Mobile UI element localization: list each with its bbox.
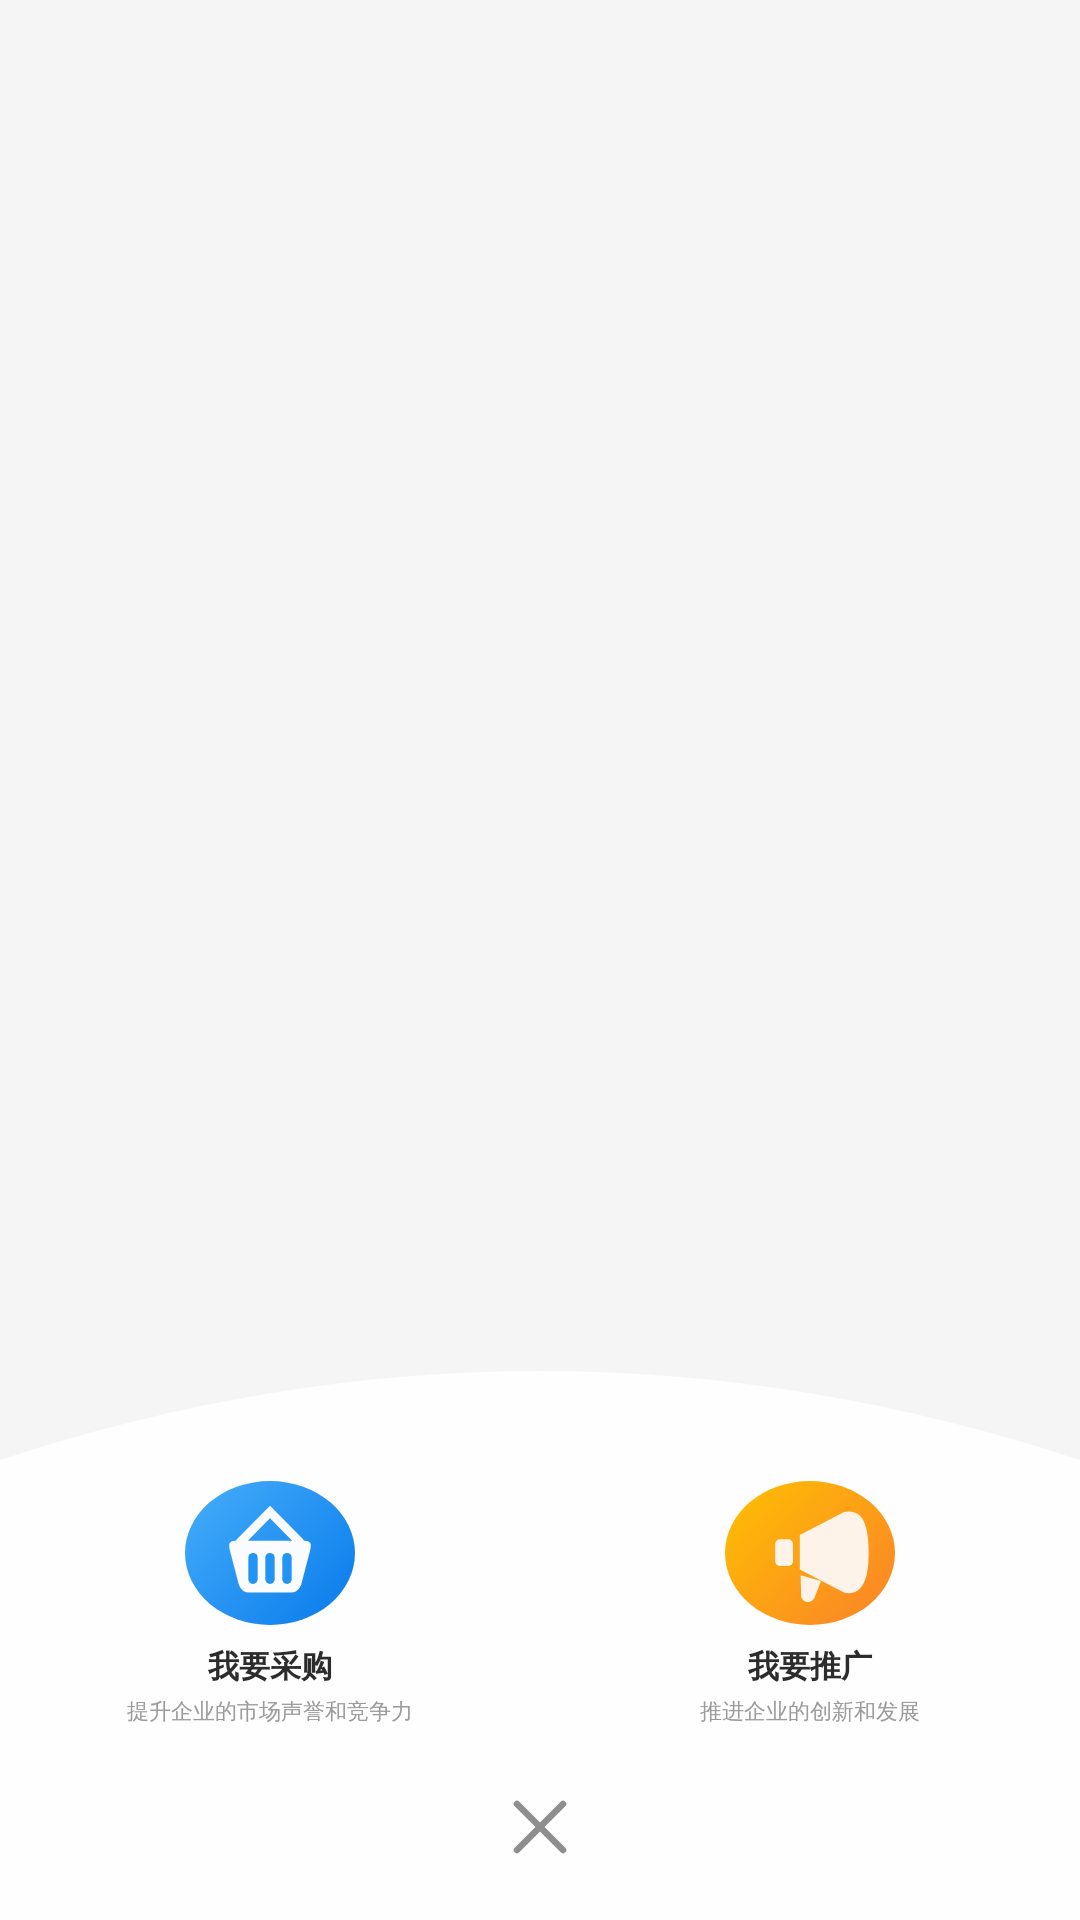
staticText: 我要推广 [580,1647,1040,1686]
button[interactable]: 我要采购 [40,1481,500,1726]
staticText: 我要采购 [40,1647,500,1686]
button[interactable]: 关闭 [480,1767,600,1887]
staticText: 提升企业的市场声誉和竞争力 [40,1698,500,1726]
staticText: 推进企业的创新和发展 [580,1698,1040,1726]
button[interactable]: 我要推广 [580,1481,1040,1726]
